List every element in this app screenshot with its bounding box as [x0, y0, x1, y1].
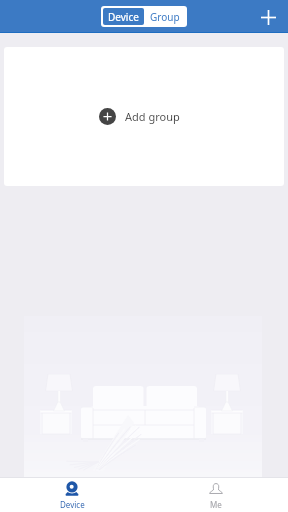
staticText: Device [108, 10, 139, 24]
button[interactable]: Device [103, 8, 144, 25]
staticText: Add group [125, 109, 180, 124]
button[interactable]: Add group [93, 102, 186, 131]
button[interactable]: Me [144, 478, 288, 512]
staticText: Device [60, 499, 85, 510]
button[interactable]: Device [0, 478, 144, 512]
staticText: Group [150, 10, 180, 24]
button[interactable]: Group [144, 8, 185, 25]
staticText: Me [210, 499, 222, 510]
button[interactable]: Add device [253, 2, 283, 32]
